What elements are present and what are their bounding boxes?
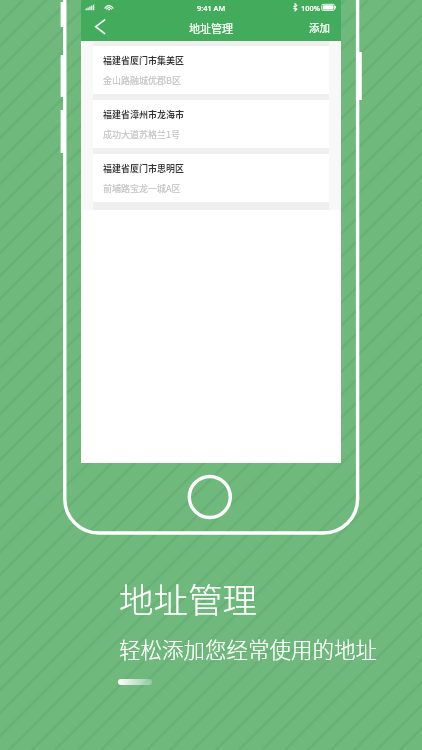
staticText: 轻松添加您经常使用的地址 — [119, 633, 378, 664]
staticText: 前埔路宝龙一城A区 — [103, 182, 181, 195]
staticText: 成功大道苏格兰1号 — [103, 128, 180, 141]
staticText: 地址管理 — [189, 20, 233, 36]
staticText: 9:41 AM — [197, 3, 226, 13]
button[interactable]: 福建省漳州市龙海市 — [93, 100, 329, 148]
staticText: 地址管理 — [119, 573, 257, 623]
staticText: 金山路融城优郡B区 — [103, 74, 181, 87]
button[interactable]: 添加 — [297, 16, 341, 41]
staticText: 福建省厦门市集美区 — [103, 54, 185, 67]
staticText: 100% — [301, 3, 320, 13]
button[interactable]: 福建省厦门市集美区 — [93, 46, 329, 94]
staticText: 添加 — [309, 20, 330, 35]
button[interactable]: Back — [81, 16, 113, 41]
button[interactable]: 福建省厦门市思明区 — [93, 154, 329, 202]
staticText: 福建省漳州市龙海市 — [103, 108, 185, 121]
staticText: 福建省厦门市思明区 — [103, 162, 185, 175]
